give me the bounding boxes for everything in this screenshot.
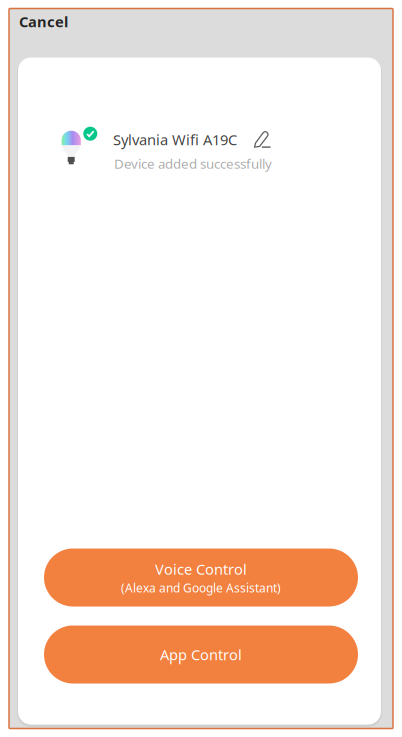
button[interactable]: Voice Control [44, 548, 358, 606]
button[interactable]: App Control [44, 625, 358, 683]
button[interactable]: Rename device [250, 127, 274, 151]
staticText: App Control [160, 645, 242, 664]
button[interactable]: Cancel [19, 6, 89, 36]
staticText: Voice Control [155, 559, 247, 579]
staticText: Sylvania Wifi A19C [113, 130, 237, 149]
staticText: Device added successfully [114, 155, 272, 172]
staticText: Cancel [19, 12, 68, 31]
staticText: (Alexa and Google Assistant) [121, 580, 281, 596]
